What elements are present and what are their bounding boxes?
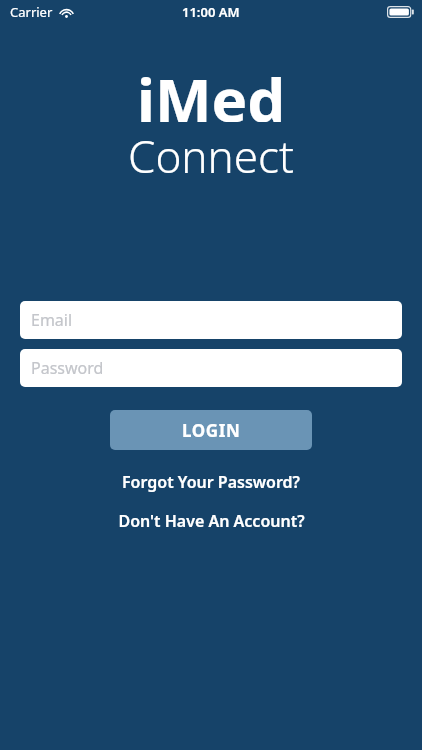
staticText: iMed [137, 58, 286, 122]
other: Wi-Fi signal [59, 7, 74, 18]
button[interactable]: LOGIN [110, 410, 312, 450]
staticText: Don't Have An Account? [118, 510, 305, 532]
button[interactable]: Forgot Your Password? [116, 471, 306, 493]
staticText: LOGIN [182, 419, 241, 442]
staticText: Email [31, 309, 73, 331]
other: Battery full [387, 6, 414, 18]
staticText: Password [31, 357, 104, 379]
staticText: 11:00 AM [182, 3, 240, 21]
button[interactable]: Don't Have An Account? [112, 510, 311, 532]
button[interactable]: Password [20, 349, 402, 387]
staticText: Carrier [10, 3, 53, 21]
staticText: Connect [128, 126, 294, 174]
staticText: Forgot Your Password? [122, 471, 300, 493]
button[interactable]: Email [20, 301, 402, 339]
